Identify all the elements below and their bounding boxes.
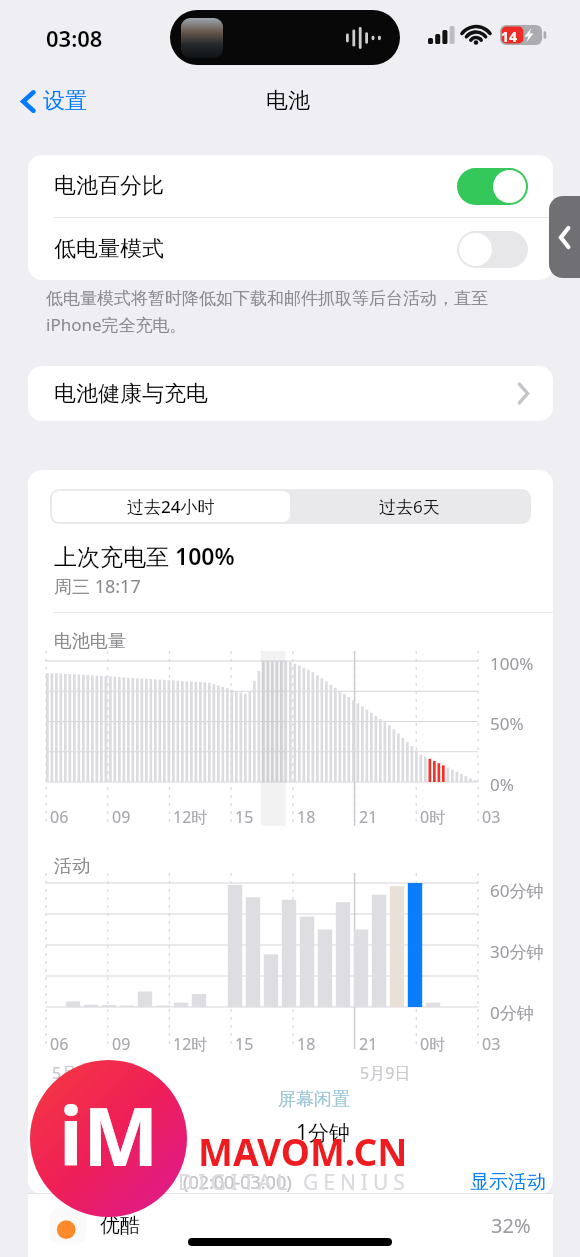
staticText: 50% (490, 712, 524, 735)
staticText: 设置 (43, 87, 87, 115)
button[interactable]: 过去24小时 (52, 491, 290, 522)
staticText: 电池 (266, 87, 310, 115)
staticText: 低电量模式将暂时降低如下载和邮件抓取等后台活动，直至 iPhone完全充电。 (46, 288, 551, 336)
staticText: 06 (50, 1033, 69, 1055)
staticText: 0时 (420, 806, 446, 828)
staticText: 1分钟 (296, 1118, 351, 1147)
button[interactable]: 返回 (549, 196, 580, 278)
staticText: 12时 (173, 806, 208, 828)
staticText: 14 (501, 27, 518, 46)
staticText: 12时 (173, 1033, 208, 1055)
staticText: 0时 (420, 1033, 446, 1055)
staticText: 电池百分比 (54, 172, 164, 200)
staticText: 显示活动 (470, 1170, 546, 1194)
staticText: DIGITAL GENIUS (178, 1168, 410, 1197)
staticText: 过去6天 (379, 495, 440, 518)
button[interactable]: 过去6天 (290, 491, 529, 522)
staticText: 60分钟 (490, 879, 544, 902)
staticText: 0% (490, 773, 514, 796)
staticText: 100% (490, 652, 534, 675)
staticText: 电池电量 (54, 630, 126, 653)
staticText: 30分钟 (490, 940, 544, 963)
staticText: 03 (482, 806, 501, 828)
staticText: iM (59, 1080, 159, 1189)
staticText: 0分钟 (490, 1001, 534, 1024)
staticText: 21 (359, 1033, 378, 1055)
staticText: 09 (112, 1033, 131, 1055)
staticText: 03:08 (46, 23, 103, 53)
staticText: 过去24小时 (127, 495, 215, 518)
staticText: 5月9日 (360, 1062, 411, 1084)
staticText: (02:00-03:00) (183, 1170, 292, 1194)
staticText: 15 (235, 1033, 254, 1055)
staticText: 优酷 (100, 1213, 140, 1238)
staticText: 06 (50, 806, 69, 828)
staticText: MAVOM.CN (198, 1126, 408, 1176)
staticText: 18 (297, 1033, 316, 1055)
staticText: 21 (359, 806, 378, 828)
staticText: 32% (491, 1212, 531, 1239)
staticText: 活动 (54, 855, 90, 878)
button[interactable]: 电池健康与充电 (28, 366, 553, 421)
staticText: 屏幕闲置 (278, 1088, 350, 1111)
button[interactable]: 设置 (12, 82, 95, 120)
staticText: 15 (235, 806, 254, 828)
staticText: 09 (112, 806, 131, 828)
button[interactable]: 低电量模式 (28, 218, 553, 280)
staticText: 18 (297, 806, 316, 828)
staticText: 03 (482, 1033, 501, 1055)
staticText: 电池健康与充电 (54, 380, 208, 408)
staticText: 5月8日 (52, 1062, 103, 1084)
button[interactable]: 优酷 (28, 1194, 553, 1257)
staticText: 周三 18:17 (54, 574, 141, 599)
button[interactable]: 电池百分比 (28, 155, 553, 217)
button[interactable]: 显示活动 (466, 1166, 550, 1194)
staticText: 上次充电至 100% (54, 540, 235, 571)
staticText: 低电量模式 (54, 235, 164, 263)
